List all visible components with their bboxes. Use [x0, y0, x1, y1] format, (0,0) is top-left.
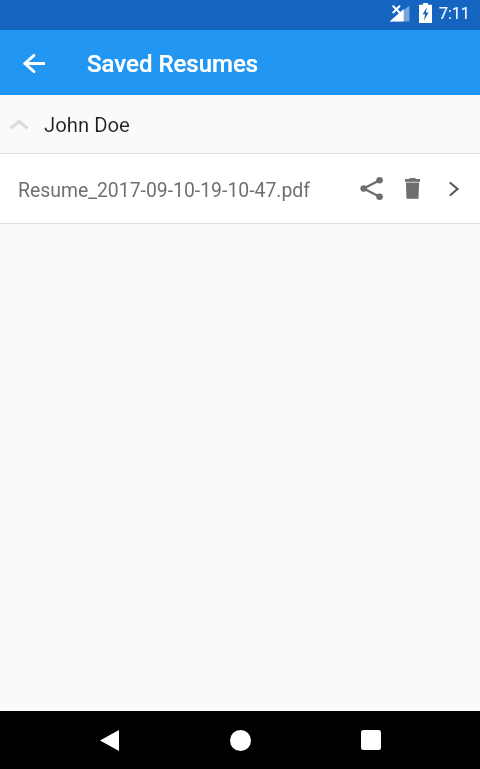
button[interactable]: Back — [10, 39, 58, 87]
staticText: Saved Resumes — [87, 50, 259, 78]
staticText: John Doe — [44, 113, 130, 137]
staticText: Resume_2017-09-10-19-10-47.pdf — [18, 179, 311, 202]
button[interactable]: Home — [207, 711, 273, 769]
button[interactable]: Resume_2017-09-10-19-10-47.pdf — [0, 154, 480, 223]
button[interactable]: Back — [76, 711, 142, 769]
button[interactable]: Open — [433, 168, 474, 209]
staticText: 7:11 — [439, 4, 470, 23]
button[interactable]: Share — [351, 168, 392, 209]
button[interactable]: Delete — [392, 168, 433, 209]
button[interactable]: Recents — [338, 711, 404, 769]
button[interactable]: John Doe — [0, 95, 480, 153]
